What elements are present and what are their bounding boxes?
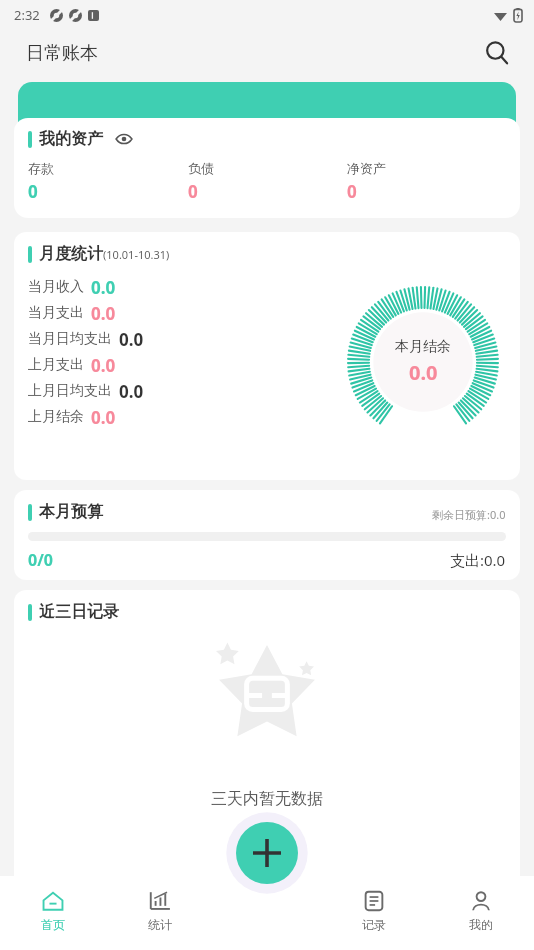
button[interactable]: Add record xyxy=(236,822,298,884)
staticText: 本月结余 xyxy=(395,338,451,356)
staticText: 0/0 xyxy=(28,549,53,571)
staticText: 三天内暂无数据 xyxy=(211,789,323,809)
staticText: 上月支出 xyxy=(28,356,84,374)
staticText: 0 xyxy=(28,180,38,203)
staticText: 我的资产 xyxy=(39,129,103,149)
staticText: 我的 xyxy=(469,917,493,932)
staticText: 当月收入 xyxy=(28,278,84,296)
staticText: 记录 xyxy=(362,917,386,932)
staticText: 0.0 xyxy=(91,302,116,325)
button[interactable]: 本月预算 xyxy=(14,490,520,580)
staticText: 当月日均支出 xyxy=(28,330,112,348)
staticText: 本月预算 xyxy=(39,502,103,522)
staticText: 0 xyxy=(347,180,357,203)
staticText: 上月结余 xyxy=(28,408,84,426)
staticText: 0 xyxy=(188,180,198,203)
button[interactable]: Toggle visibility xyxy=(113,128,135,150)
button[interactable]: 记录 xyxy=(320,876,427,950)
staticText: 首页 xyxy=(41,917,65,932)
button[interactable]: 我的 xyxy=(427,876,534,950)
button[interactable]: 首页 xyxy=(0,876,106,950)
staticText: 月度统计 xyxy=(39,244,103,264)
staticText: (10.01-10.31) xyxy=(103,247,170,262)
staticText: 剩余日预算:0.0 xyxy=(432,507,506,522)
staticText: 0.0 xyxy=(119,380,144,403)
staticText: 支出:0.0 xyxy=(450,550,506,570)
staticText: 负债 xyxy=(188,160,214,176)
staticText: 0.0 xyxy=(409,359,438,386)
staticText: 0.0 xyxy=(119,328,144,351)
staticText: 0.0 xyxy=(91,406,116,429)
staticText: 2:32 xyxy=(14,6,40,24)
button[interactable]: 月度统计 xyxy=(14,232,520,480)
staticText: 当月支出 xyxy=(28,304,84,322)
staticText: 存款 xyxy=(28,160,54,176)
button[interactable]: 我的资产 xyxy=(14,118,520,218)
staticText: 上月日均支出 xyxy=(28,382,112,400)
staticText: 0.0 xyxy=(91,276,116,299)
staticText: 0.0 xyxy=(91,354,116,377)
button[interactable]: Search xyxy=(478,34,516,72)
staticText: 近三日记录 xyxy=(39,602,119,622)
button[interactable]: 统计 xyxy=(106,876,213,950)
staticText: 日常账本 xyxy=(26,42,98,65)
staticText: 净资产 xyxy=(347,160,386,176)
staticText: 统计 xyxy=(148,917,172,932)
